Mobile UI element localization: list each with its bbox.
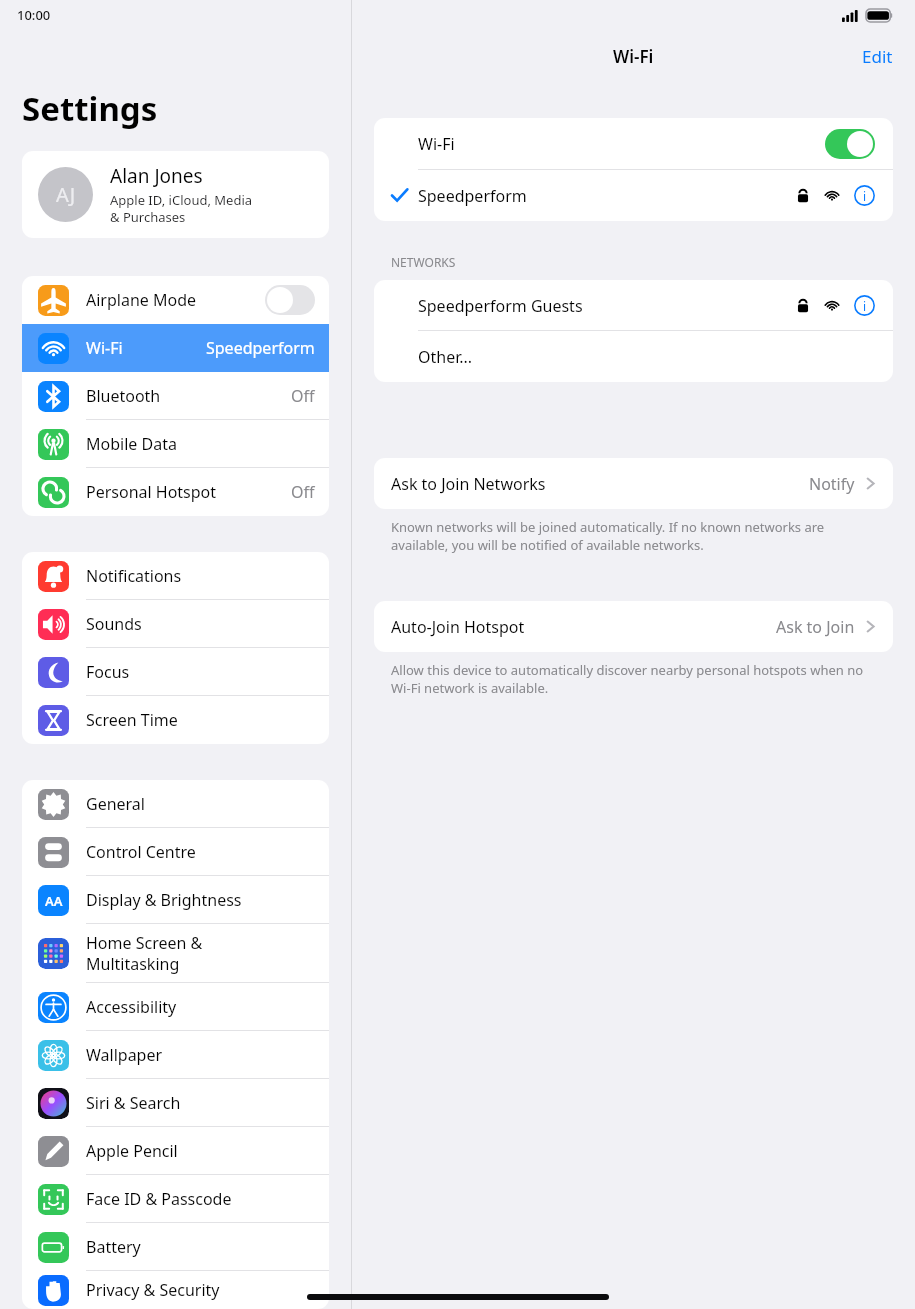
button[interactable]: Airplane Mode toggle (265, 285, 315, 315)
staticText: 10:00 (17, 6, 51, 24)
button[interactable]: Personal Hotspot (22, 468, 329, 516)
staticText: Wi-Fi (86, 337, 206, 359)
button[interactable]: Siri & Search (22, 1079, 329, 1127)
staticText: Privacy & Security (86, 1279, 315, 1301)
button[interactable]: Notifications (22, 552, 329, 600)
staticText: Known networks will be joined automatica… (391, 518, 875, 554)
button[interactable]: Sounds (22, 600, 329, 648)
staticText: Battery (86, 1236, 315, 1258)
staticText: Siri & Search (86, 1092, 315, 1114)
staticText: Airplane Mode (86, 289, 265, 311)
staticText: AA (45, 892, 63, 910)
button[interactable]: Home Screen & Multitasking (22, 924, 329, 983)
staticText: Apple ID, iCloud, Media & Purchases (110, 191, 253, 226)
button[interactable]: More info about Speedperform (854, 185, 875, 206)
button[interactable]: Focus (22, 648, 329, 696)
staticText: Settings (22, 86, 158, 131)
button[interactable]: Edit (840, 39, 915, 74)
staticText: Home Screen & Multitasking (86, 932, 315, 975)
staticText: i (863, 188, 867, 204)
button[interactable]: Bluetooth (22, 372, 329, 420)
button[interactable]: Speedperform (374, 170, 893, 221)
staticText: Control Centre (86, 841, 315, 863)
button[interactable]: Privacy & Security (22, 1271, 329, 1309)
button[interactable]: AJ (22, 151, 329, 238)
staticText: Focus (86, 661, 315, 683)
staticText: Wi-Fi (418, 133, 825, 155)
staticText: Speedperform (206, 337, 315, 359)
button[interactable]: Battery (22, 1223, 329, 1271)
staticText: Notifications (86, 565, 315, 587)
staticText: Mobile Data (86, 433, 315, 455)
button[interactable]: Wallpaper (22, 1031, 329, 1079)
staticText: Speedperform (418, 185, 796, 207)
button[interactable]: Control Centre (22, 828, 329, 876)
staticText: Apple Pencil (86, 1140, 315, 1162)
staticText: Bluetooth (86, 385, 291, 407)
staticText: Ask to Join (776, 616, 855, 638)
button[interactable]: Speedperform Guests (374, 280, 893, 331)
button[interactable]: Accessibility (22, 983, 329, 1031)
button[interactable]: Airplane Mode (22, 276, 329, 324)
staticText: Personal Hotspot (86, 481, 291, 503)
button[interactable]: Wi-Fi toggle (825, 129, 875, 159)
staticText: Display & Brightness (86, 889, 315, 911)
staticText: General (86, 793, 315, 815)
staticText: Wi-Fi (613, 45, 654, 68)
staticText: Edit (862, 45, 893, 68)
button[interactable]: Other... (374, 331, 893, 382)
staticText: i (863, 298, 867, 314)
staticText: Auto-Join Hotspot (391, 616, 776, 638)
staticText: NETWORKS (391, 254, 456, 270)
staticText: Alan Jones (110, 163, 203, 189)
button[interactable]: Mobile Data (22, 420, 329, 468)
button[interactable]: Auto-Join Hotspot (374, 601, 893, 652)
button[interactable]: Ask to Join Networks (374, 458, 893, 509)
staticText: Ask to Join Networks (391, 473, 809, 495)
button[interactable]: Face ID & Passcode (22, 1175, 329, 1223)
staticText: Accessibility (86, 996, 315, 1018)
button[interactable]: Apple Pencil (22, 1127, 329, 1175)
staticText: Screen Time (86, 709, 315, 731)
button[interactable]: Screen Time (22, 696, 329, 744)
staticText: Wallpaper (86, 1044, 315, 1066)
staticText: Sounds (86, 613, 315, 635)
staticText: Off (291, 481, 315, 503)
button[interactable]: General (22, 780, 329, 828)
staticText: Speedperform Guests (418, 295, 796, 317)
staticText: Other... (418, 346, 473, 368)
staticText: AJ (56, 181, 76, 208)
staticText: Off (291, 385, 315, 407)
staticText: Allow this device to automatically disco… (391, 661, 875, 697)
staticText: Notify (809, 473, 855, 495)
button[interactable]: Wi-Fi (22, 324, 329, 372)
button[interactable]: AA (22, 876, 329, 924)
button[interactable]: More info about Speedperform Guests (854, 295, 875, 316)
staticText: Face ID & Passcode (86, 1188, 315, 1210)
